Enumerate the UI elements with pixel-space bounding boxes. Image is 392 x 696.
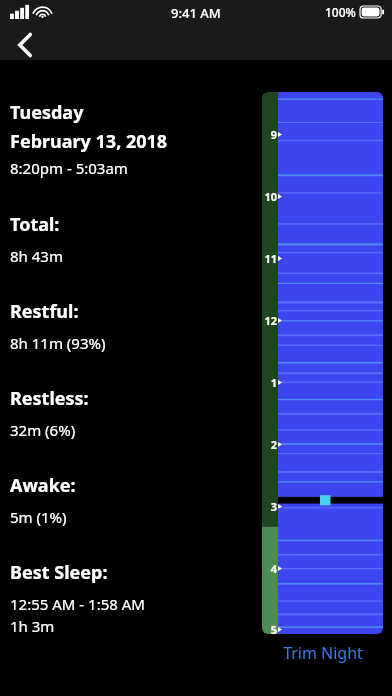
staticText: 11	[264, 251, 277, 266]
staticText: 4	[270, 561, 277, 576]
staticText: 8:20pm - 5:03am	[10, 158, 128, 178]
button[interactable]: Trim Night	[262, 638, 383, 668]
staticText: 100%	[325, 4, 356, 20]
staticText: 9:41 AM	[171, 4, 221, 22]
staticText: 1	[270, 375, 277, 390]
staticText: 2	[270, 437, 277, 452]
staticText: Trim Night	[283, 642, 363, 664]
staticText: 5	[270, 622, 277, 634]
staticText: 32m (6%)	[10, 420, 76, 440]
staticText: 8h 11m (93%)	[10, 333, 106, 353]
staticText: 1h 3m	[10, 616, 55, 636]
staticText: Best Sleep:	[10, 560, 108, 585]
staticText: Restful:	[10, 299, 79, 324]
staticText: 12:55 AM - 1:58 AM	[10, 594, 145, 614]
staticText: 10	[264, 189, 277, 204]
staticText: Tuesday	[10, 100, 84, 125]
staticText: 5m (1%)	[10, 507, 67, 527]
staticText: Total:	[10, 212, 60, 237]
staticText: February 13, 2018	[10, 129, 168, 154]
staticText: 3	[270, 499, 277, 514]
staticText: 12	[264, 313, 277, 328]
button[interactable]: Back	[4, 24, 46, 66]
staticText: 9	[270, 127, 277, 142]
staticText: Restless:	[10, 386, 89, 411]
staticText: 8h 43m	[10, 246, 63, 266]
staticText: Awake:	[10, 473, 76, 498]
